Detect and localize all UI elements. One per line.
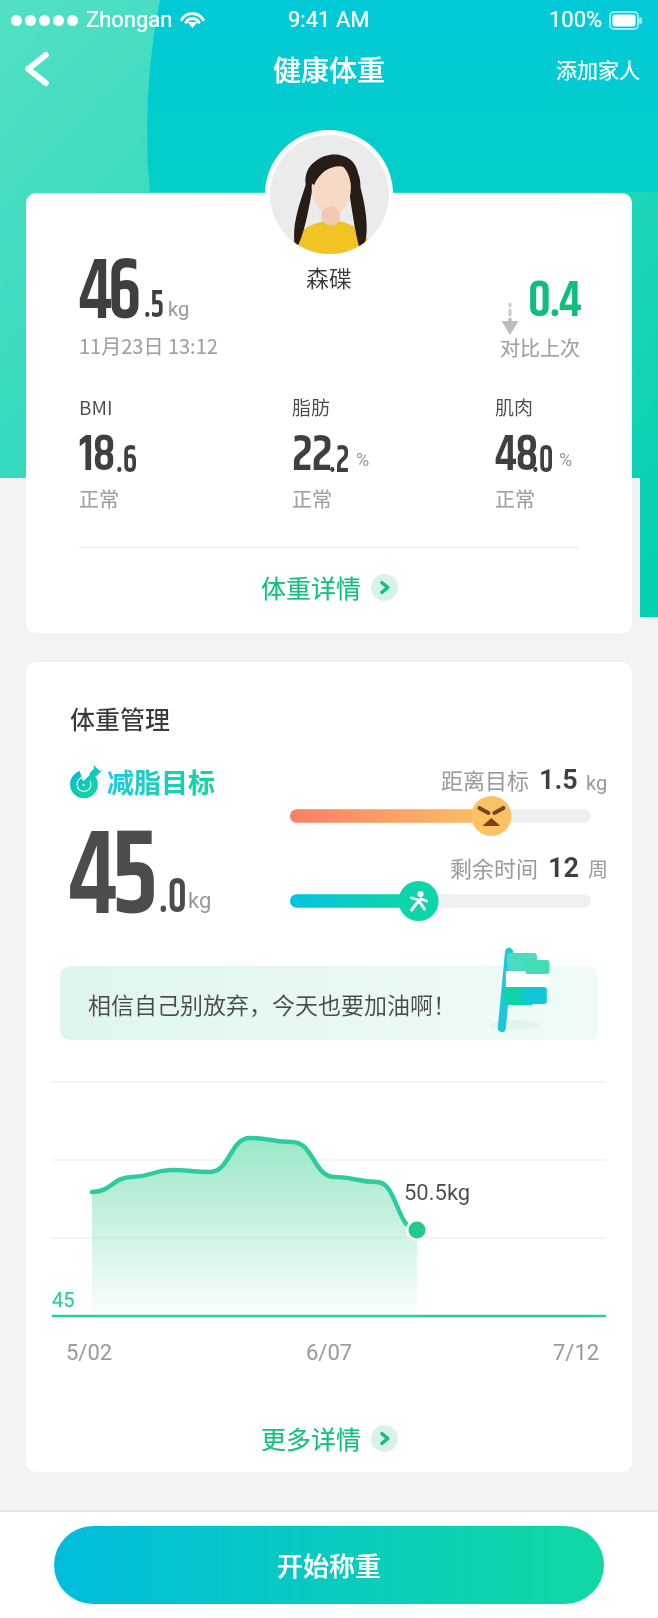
staticText: 0.4: [528, 262, 580, 340]
staticText: 11月23日 13:12: [79, 331, 218, 360]
staticText: Zhongan: [86, 7, 173, 33]
staticText: 45: [69, 788, 154, 970]
staticText: 7/12: [553, 1340, 600, 1366]
staticText: 正常: [495, 484, 535, 513]
staticText: 对比上次: [500, 333, 580, 362]
staticText: 5/02: [66, 1340, 113, 1366]
button[interactable]: 体重详情: [26, 555, 632, 619]
staticText: 周: [588, 854, 608, 883]
staticText: BMI: [79, 393, 113, 421]
staticText: 添加家人: [556, 54, 640, 84]
staticText: 更多详情: [261, 1420, 362, 1456]
button[interactable]: 添加家人: [538, 44, 658, 94]
staticText: 森碟: [306, 260, 352, 293]
staticText: 18: [79, 418, 115, 494]
staticText: 正常: [292, 484, 332, 513]
staticText: 肌肉: [495, 393, 534, 421]
staticText: 脂肪: [292, 393, 331, 421]
staticText: 6/07: [306, 1340, 353, 1366]
staticText: .2: [329, 432, 350, 490]
staticText: 46: [79, 228, 138, 359]
staticText: kg: [586, 771, 608, 794]
staticText: %: [356, 449, 370, 470]
staticText: kg: [168, 297, 190, 320]
staticText: 体重详情: [261, 569, 362, 605]
staticText: 48: [495, 418, 538, 494]
button[interactable]: 更多详情: [26, 1404, 632, 1472]
button[interactable]: 开始称重: [54, 1526, 604, 1604]
staticText: .5: [144, 277, 164, 335]
staticText: 健康体重: [273, 49, 386, 90]
staticText: %: [559, 449, 573, 470]
staticText: kg: [188, 888, 212, 914]
staticText: 100%: [549, 7, 603, 33]
staticText: 剩余时间: [450, 851, 539, 883]
staticText: 12: [548, 852, 579, 884]
staticText: 50.5kg: [404, 1180, 471, 1206]
staticText: 正常: [79, 484, 119, 513]
staticText: 体重管理: [70, 700, 171, 736]
staticText: 减脂目标: [107, 762, 215, 801]
staticText: .6: [116, 432, 138, 490]
staticText: .0: [159, 862, 187, 935]
staticText: 距离目标: [441, 763, 530, 795]
staticText: 开始称重: [277, 1546, 382, 1584]
staticText: 22: [292, 418, 332, 494]
button[interactable]: Back: [12, 44, 62, 94]
staticText: 1.5: [539, 764, 578, 796]
staticText: 45: [52, 1288, 75, 1311]
staticText: 相信自己别放弃，今天也要加油啊！: [88, 987, 456, 1020]
staticText: 9:41 AM: [288, 7, 370, 33]
staticText: .0: [532, 432, 554, 490]
